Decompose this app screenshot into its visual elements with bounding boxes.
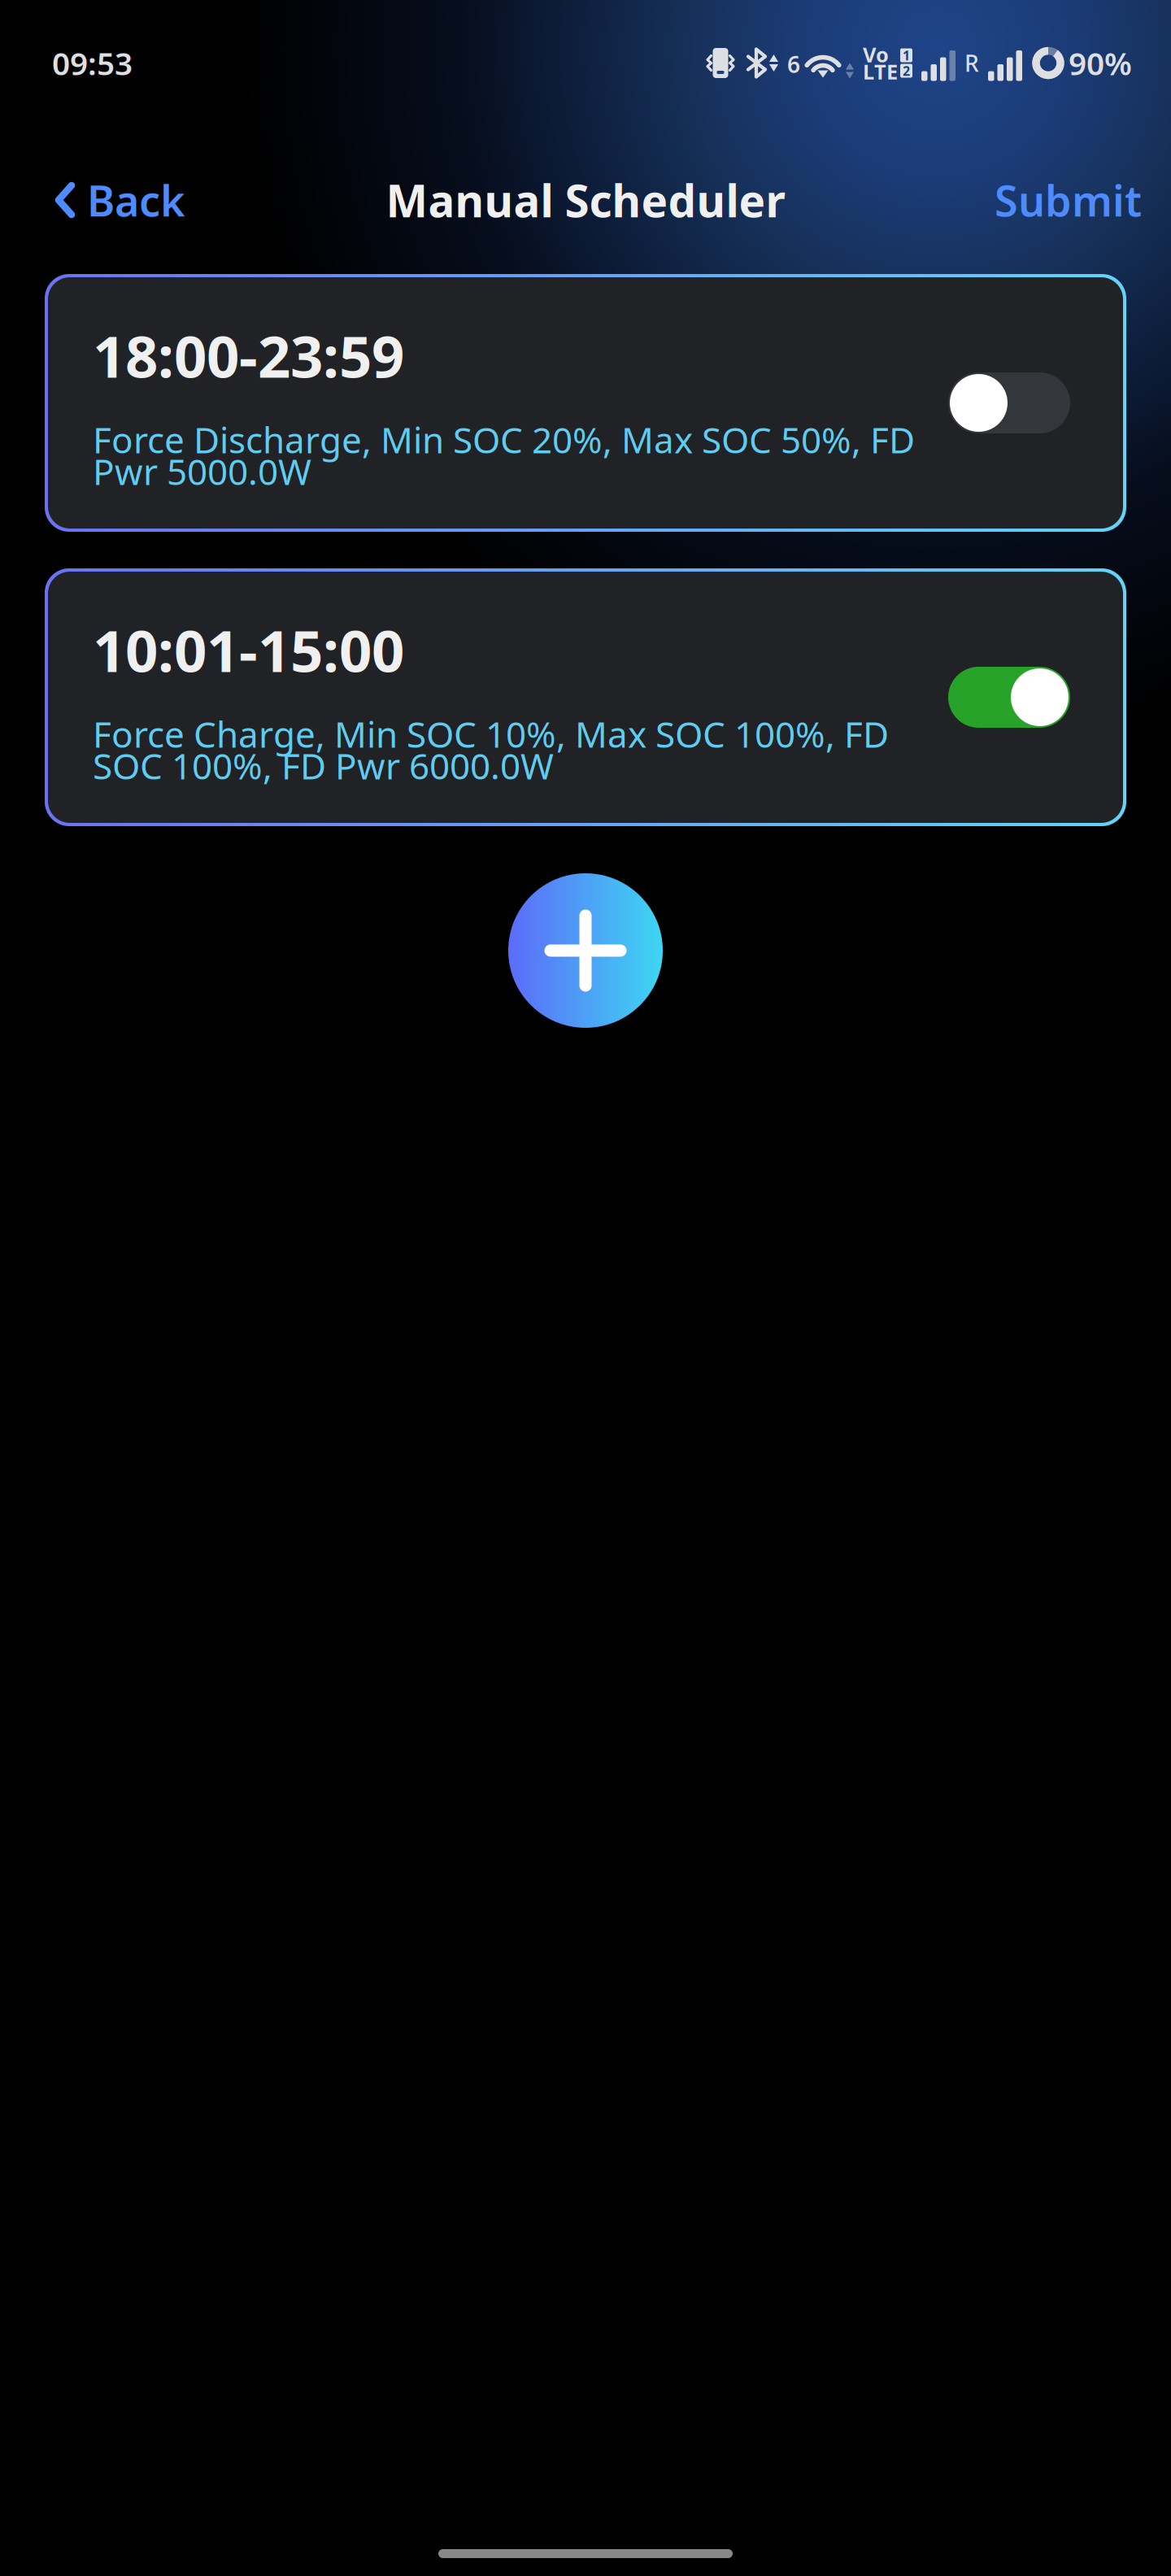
button[interactable]: Submit — [986, 159, 1150, 241]
staticText: SOC 100%, FD Pwr 6000.0W — [93, 742, 554, 789]
staticText: Pwr 5000.0W — [93, 447, 311, 495]
button[interactable]: Add schedule — [508, 873, 663, 1028]
button[interactable]: Back — [46, 159, 194, 241]
staticText: 09:53 — [52, 42, 133, 84]
staticText: 1 — [903, 47, 910, 64]
button[interactable]: 10:01-15:00 — [45, 568, 1126, 826]
staticText: 18:00-23:59 — [93, 317, 404, 393]
staticText: Vo — [863, 41, 889, 68]
staticText: 2 — [903, 62, 910, 79]
button[interactable]: 18:00-23:59 — [45, 274, 1126, 532]
staticText: 6 — [787, 49, 800, 79]
staticText: 10:01-15:00 — [93, 612, 404, 688]
staticText: R — [964, 48, 979, 78]
staticText: Submit — [995, 172, 1142, 228]
staticText: 90% — [1069, 42, 1132, 84]
staticText: LTE — [863, 58, 898, 85]
staticText: Force Discharge, Min SOC 20%, Max SOC 50… — [93, 416, 915, 463]
staticText: Force Charge, Min SOC 10%, Max SOC 100%,… — [93, 710, 889, 758]
staticText: Manual Scheduler — [386, 171, 785, 230]
staticText: Back — [87, 172, 185, 228]
